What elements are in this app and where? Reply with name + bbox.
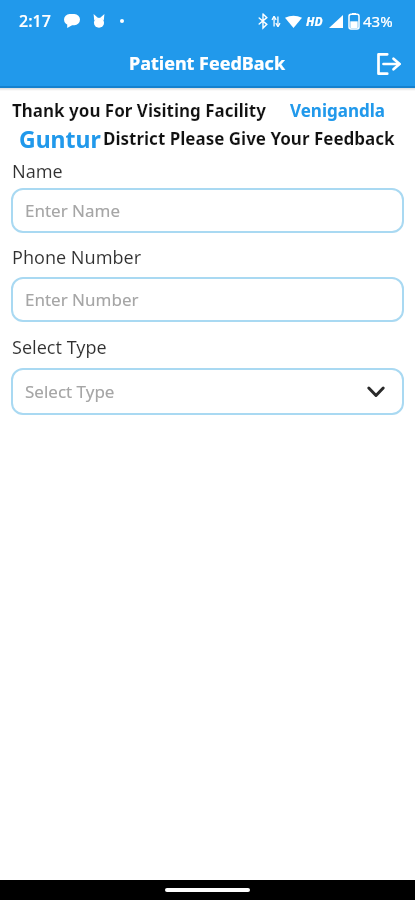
staticText: Patient FeedBack (129, 51, 286, 76)
staticText: Enter Name (25, 199, 121, 222)
button[interactable]: Select Type (11, 368, 404, 415)
staticText: Phone Number (12, 245, 142, 270)
staticText: District Please Give Your Feedback (103, 127, 395, 150)
button[interactable]: Enter Number (11, 277, 404, 322)
staticText: 43% (363, 11, 393, 31)
staticText: Enter Number (25, 288, 139, 311)
staticText: Select Type (12, 335, 107, 360)
staticText: Thank you For Visiting Facility (12, 99, 266, 122)
button[interactable] (375, 50, 402, 77)
staticText: 2:17 (19, 10, 51, 32)
staticText: Guntur (19, 123, 101, 154)
staticText: HD (306, 13, 323, 29)
staticText: Select Type (25, 380, 115, 403)
staticText: Venigandla (290, 99, 385, 122)
button[interactable]: Enter Name (11, 188, 404, 233)
staticText: Name (12, 159, 63, 184)
